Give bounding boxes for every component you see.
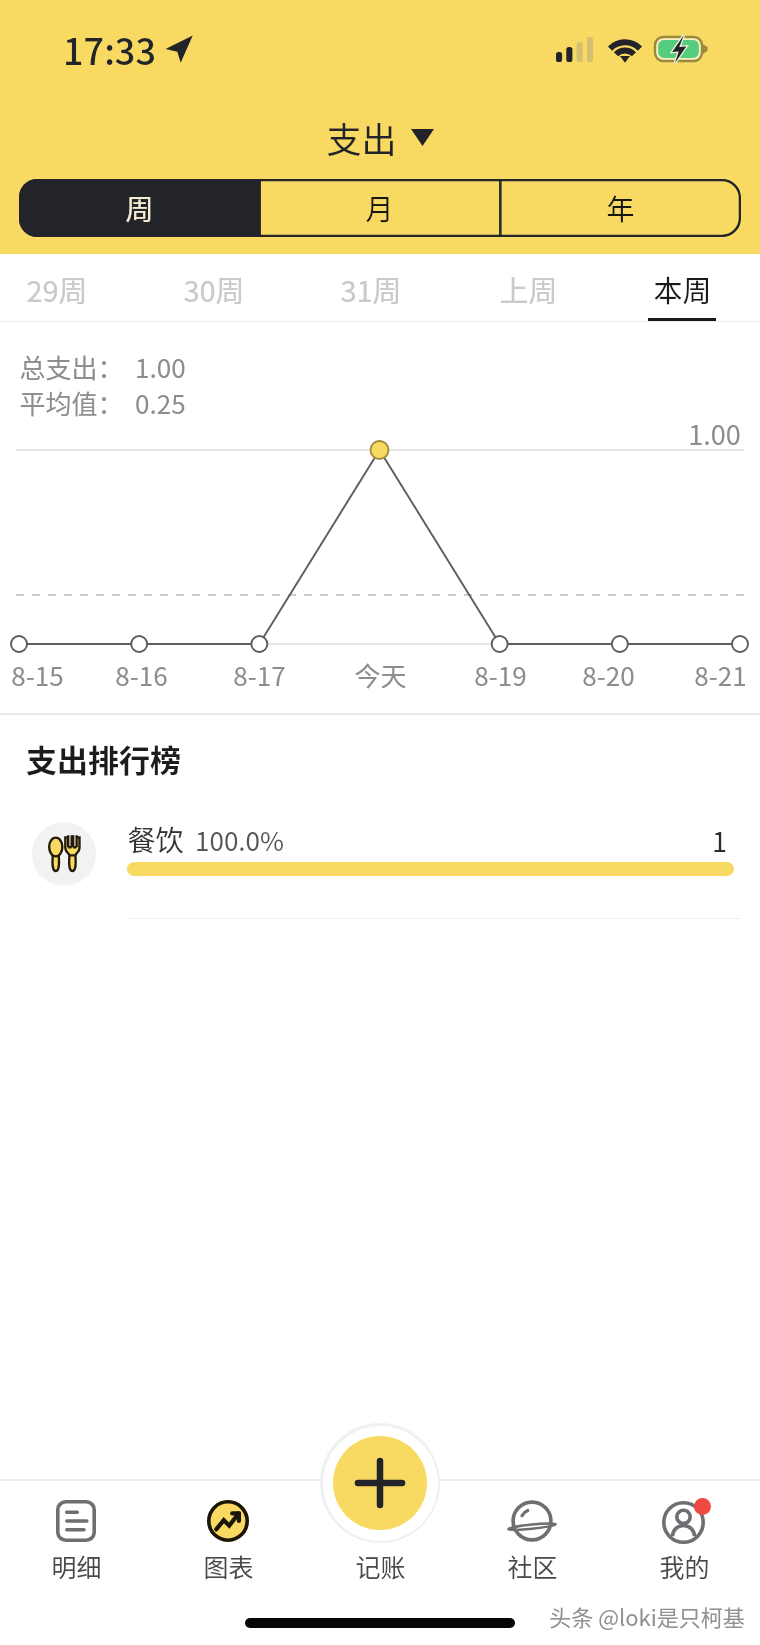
button[interactable]: 29周 [0,254,127,321]
button[interactable]: 周 [19,179,259,237]
staticText: 我的 [659,1548,710,1584]
staticText: 记账 [355,1548,406,1584]
staticText: 周 [125,188,154,229]
staticText: 29周 [26,268,88,310]
staticText: 30周 [183,268,245,310]
staticText: 100.0% [195,821,284,859]
staticText: 餐饮 [127,819,184,860]
staticText: 今天 [354,656,407,694]
button[interactable]: 餐饮 [0,812,760,898]
button[interactable]: 年 [500,179,741,237]
staticText: 1.00 [688,414,741,453]
staticText: 支出排行榜 [26,736,181,781]
button[interactable]: 记账 添加 [333,1436,427,1530]
staticText: 上周 [499,268,558,310]
button[interactable]: 记账 [304,1480,456,1610]
staticText: 支出 [326,112,397,163]
button[interactable]: 31周 [301,254,441,321]
staticText: 8-21 [694,656,747,694]
staticText: 8-17 [233,656,286,694]
button[interactable]: 图表 [152,1480,304,1610]
button[interactable]: 支出 [316,108,444,167]
staticText: 17:33 [63,23,156,75]
staticText: 8-20 [582,656,635,694]
staticText: 社区 [507,1548,558,1584]
staticText: 8-16 [115,656,168,694]
staticText: 31周 [340,268,402,310]
button[interactable]: 我的 [608,1480,760,1610]
staticText: 明细 [51,1548,102,1584]
staticText: 总支出： 1.00 [19,348,186,386]
button[interactable]: 明细 [0,1480,152,1610]
staticText: 平均值： 0.25 [19,384,186,422]
staticText: 月 [365,188,394,229]
staticText: 年 [606,188,635,229]
staticText: 本周 [653,268,712,310]
button[interactable]: 本周 [612,254,752,321]
staticText: 头条 @loki是只柯基 [549,1600,745,1632]
button[interactable]: 30周 [144,254,284,321]
staticText: 8-15 [11,656,64,694]
staticText: 8-19 [474,656,527,694]
staticText: 1 [712,821,727,860]
button[interactable]: 上周 [458,254,598,321]
button[interactable]: 社区 [456,1480,608,1610]
staticText: 图表 [203,1548,254,1584]
button[interactable]: 月 [259,179,500,237]
